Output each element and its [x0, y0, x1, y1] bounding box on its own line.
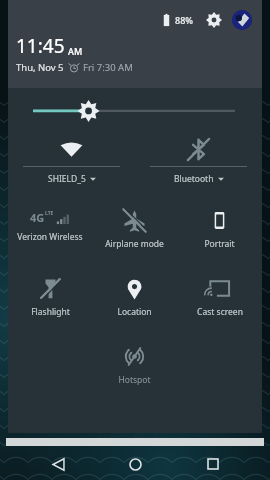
staticText: 4G: [30, 210, 45, 225]
button[interactable]: Verizon Wireless: [8, 433, 262, 447]
button[interactable]: Location: [92, 272, 177, 334]
staticText: Hotspot: [118, 374, 151, 386]
button[interactable]: Settings: [204, 10, 224, 30]
staticText: Airplane mode: [105, 238, 164, 250]
button[interactable]: Hotspot: [92, 340, 177, 402]
button[interactable]: Airplane mode: [92, 204, 177, 266]
button[interactable]: SHIELD_5: [8, 132, 135, 194]
staticText: Fri 7:30 AM: [83, 61, 133, 74]
staticText: Bluetooth: [174, 173, 214, 185]
button[interactable]: Flashlight: [8, 272, 92, 334]
staticText: Portrait: [204, 238, 235, 250]
staticText: Verizon Wireless: [17, 231, 83, 243]
staticText: AM: [68, 45, 83, 57]
staticText: 11:45: [16, 33, 65, 59]
button[interactable]: Portrait: [177, 204, 262, 266]
staticText: Verizon Wireless: [100, 433, 171, 445]
button[interactable]: Back: [38, 448, 78, 480]
staticText: 88%: [175, 14, 193, 26]
staticText: SHIELD_5: [48, 173, 86, 185]
staticText: Location: [117, 306, 152, 318]
staticText: LTE: [45, 210, 54, 217]
button[interactable]: Recent apps: [193, 448, 233, 480]
button[interactable]: Brightness: [8, 88, 262, 132]
staticText: Thu, Nov 5: [16, 61, 64, 74]
button[interactable]: Home: [115, 448, 155, 480]
button[interactable]: Cast screen: [177, 272, 262, 334]
button[interactable]: User profile: [232, 10, 252, 30]
button[interactable]: 4G: [8, 204, 92, 266]
staticText: Cast screen: [197, 306, 243, 318]
button[interactable]: Bluetooth: [135, 132, 262, 194]
staticText: Flashlight: [31, 306, 70, 318]
